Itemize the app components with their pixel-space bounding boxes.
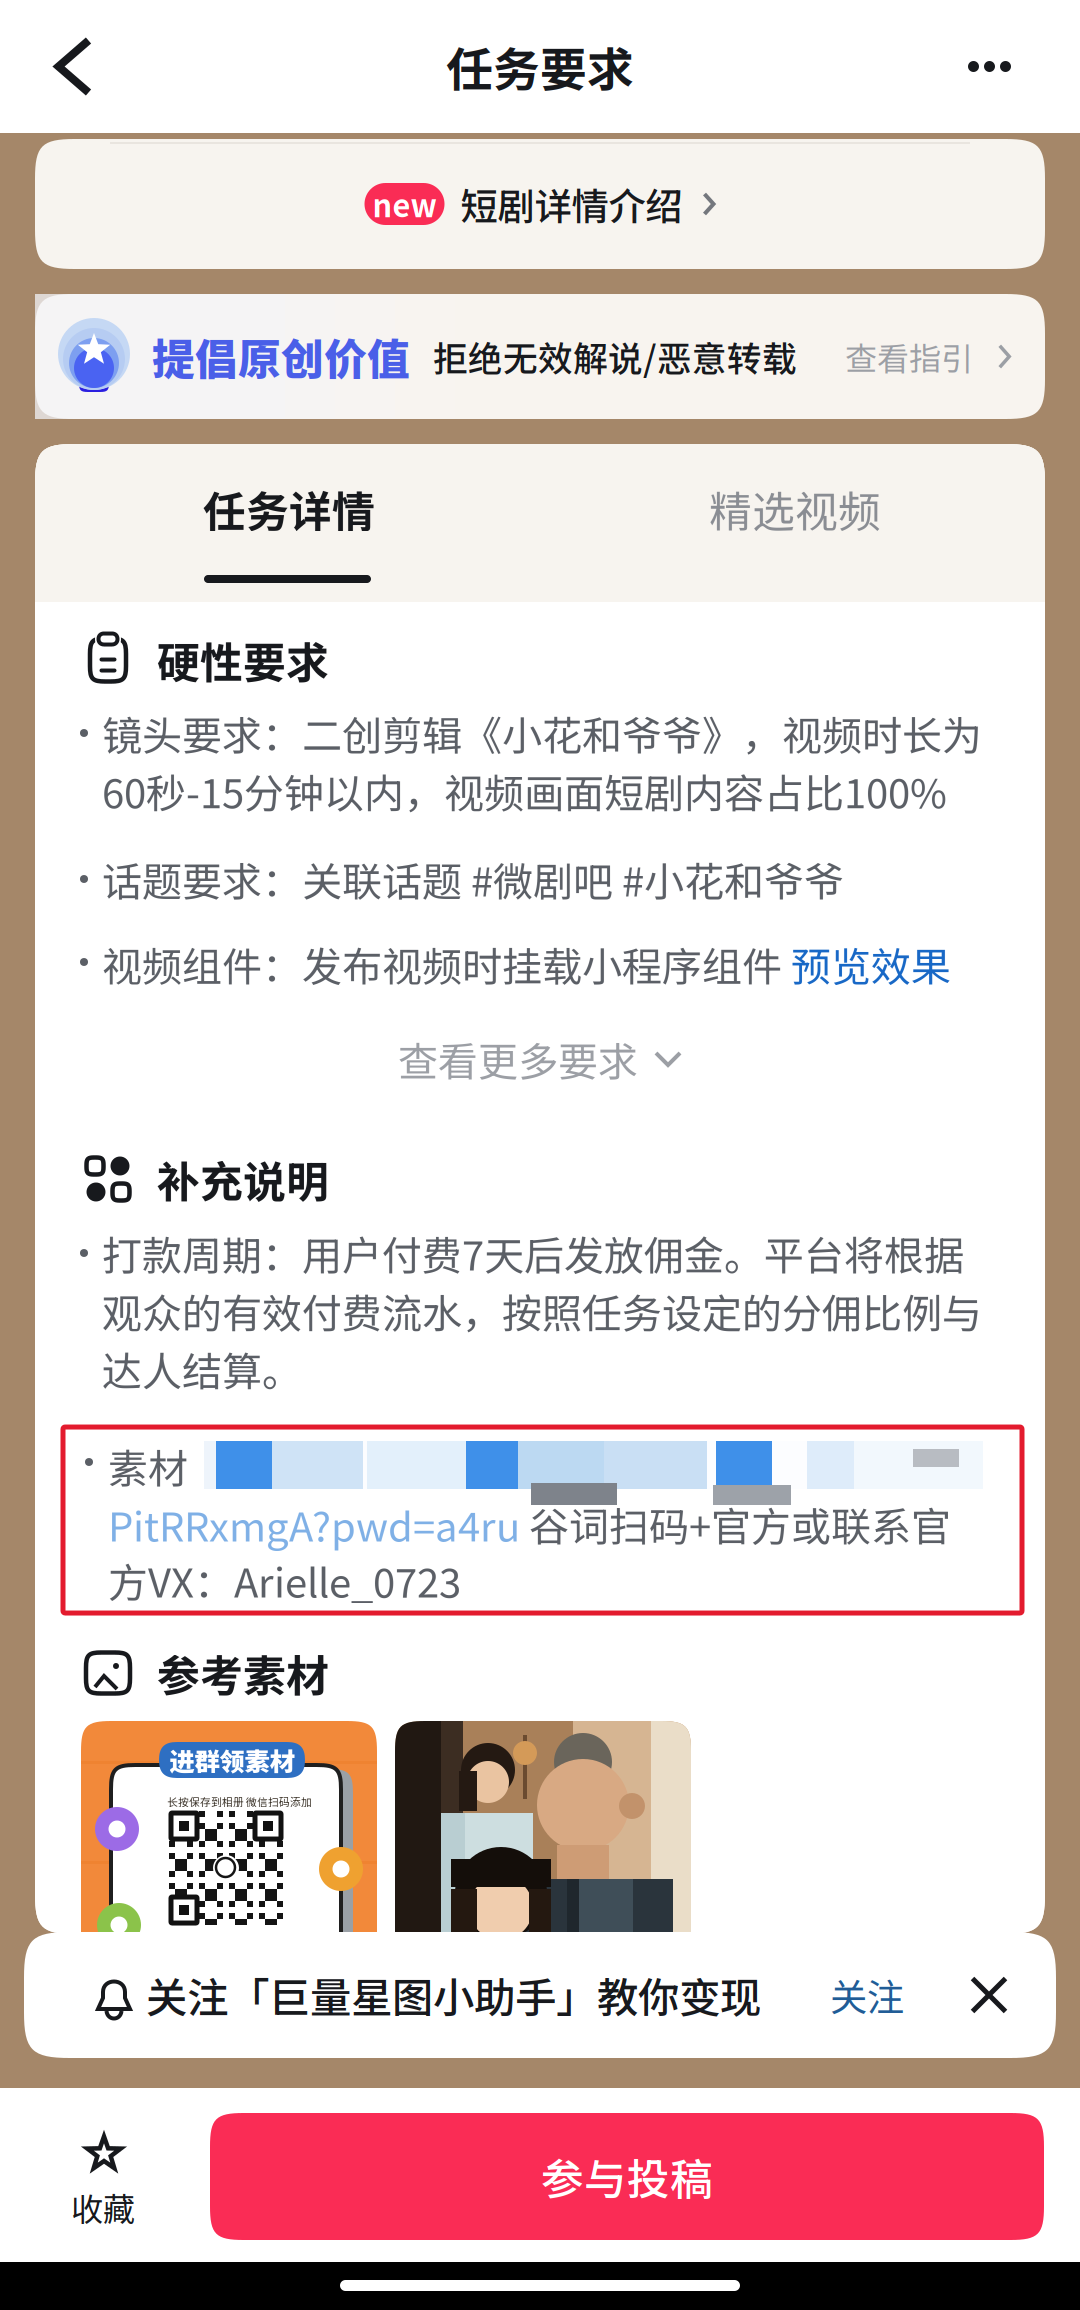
staticText: 视频组件：发布视频时挂载小程序组件 (102, 935, 791, 993)
staticText: 参与投稿 (541, 2146, 713, 2207)
button[interactable]: 提倡原创价值 (35, 294, 1045, 419)
staticText: 关注「巨量星图小助手」教你变现 (146, 1965, 761, 2025)
staticText: 镜头要求：二创剪辑《小花和爷爷》，视频时长为60秒-15分钟以内，视频画面短剧内… (102, 704, 982, 820)
button[interactable]: new (35, 139, 1045, 269)
staticText: 话题要求：关联话题 #微剧吧 #小花和爷爷 (102, 850, 844, 908)
button[interactable]: 预览效果 (791, 935, 951, 993)
staticText: 素材 (108, 1437, 188, 1495)
staticText: 收藏 (71, 2184, 135, 2230)
staticText: 进群领素材 (169, 1742, 294, 1778)
staticText: 预览效果 (791, 935, 951, 993)
staticText: 方VX：Arielle_0723 (108, 1551, 461, 1609)
staticText: 补充说明 (157, 1148, 329, 1210)
staticText: 查看指引 (845, 333, 973, 380)
staticText: 拒绝无效解说/恶意转载 (433, 331, 797, 382)
staticText: 长按保存到相册 微信扫码添加 (167, 1794, 312, 1809)
staticText: 更多短剧素材网盘 (167, 1973, 327, 2002)
staticText: 精选视频 (709, 478, 881, 540)
button[interactable]: 参与投稿 (210, 2113, 1044, 2240)
staticText: 打款周期：用户付费7天后发放佣金。平台将根据观众的有效付费流水，按照任务设定的分… (102, 1224, 982, 1398)
staticText: 任务详情 (203, 478, 375, 540)
button[interactable]: 精选视频 (540, 444, 1045, 602)
staticText: 硬性要求 (157, 629, 329, 691)
button[interactable]: 关注 (812, 1932, 922, 2058)
button[interactable]: 查看更多要求 (35, 1023, 1045, 1095)
button[interactable]: 返回 (0, 0, 147, 133)
button[interactable]: 更多 (918, 0, 1061, 133)
staticText: 谷词扫码+官方或联系官 (520, 1495, 951, 1553)
button[interactable]: 任务详情 (35, 444, 540, 602)
staticText: new (372, 182, 436, 226)
staticText: 关注 (830, 1968, 904, 2022)
staticText: 短剧详情介绍 (460, 177, 682, 231)
staticText: 参考素材 (157, 1642, 329, 1704)
staticText: 查看更多要求 (398, 1030, 638, 1088)
staticText: PitRRxmgA?pwd=a4ru (108, 1495, 520, 1553)
button[interactable]: 关闭 (941, 1932, 1037, 2058)
staticText: 任务要求 (446, 33, 634, 100)
button[interactable]: 收藏 (0, 2088, 200, 2262)
staticText: 提倡原创价值 (152, 326, 410, 387)
